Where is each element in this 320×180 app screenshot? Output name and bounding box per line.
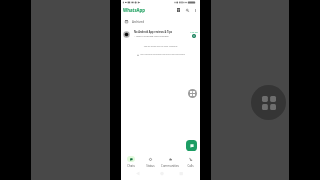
staticText: 7:05 pm <box>190 31 198 34</box>
button[interactable]: Calls <box>180 152 200 170</box>
staticText: Communities <box>161 164 179 168</box>
button[interactable]: Communities <box>160 152 180 170</box>
staticText: Chats <box>127 164 135 168</box>
staticText: Status <box>146 164 155 168</box>
staticText: Archived <box>132 20 145 24</box>
staticText: Your personal messages are end-to-end en… <box>140 53 185 56</box>
button[interactable]: Camera <box>175 7 181 13</box>
staticText: ~ https://youtube.com/channel/UChGnbfG7n… <box>134 34 184 37</box>
button[interactable]: Search <box>184 7 190 13</box>
button[interactable]: No Android App reviews & Tips <box>121 28 200 40</box>
button[interactable]: Apps <box>188 89 197 98</box>
button[interactable]: New chat <box>186 140 197 151</box>
button[interactable]: Status <box>140 152 160 170</box>
button[interactable]: Chats <box>121 152 140 170</box>
staticText: Calls <box>187 164 194 168</box>
button[interactable]: Archived <box>121 17 200 26</box>
staticText: WhatsApp <box>123 7 145 13</box>
staticText: Tap an invite link to start chatting <box>121 45 200 48</box>
button[interactable]: Apps <box>251 85 286 120</box>
staticText: No Android App reviews & Tips <box>134 30 173 33</box>
button[interactable]: More options <box>193 8 198 13</box>
